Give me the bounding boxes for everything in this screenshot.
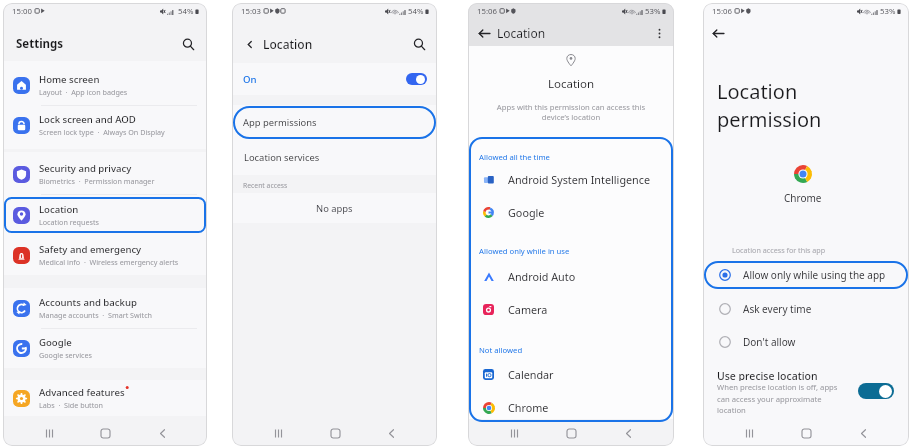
staticText: Camera bbox=[508, 302, 548, 317]
button[interactable]: Home bbox=[324, 422, 346, 444]
staticText: Location access for this app bbox=[732, 245, 826, 255]
button[interactable]: Security and privacy bbox=[3, 154, 207, 194]
staticText: Location permission bbox=[717, 78, 822, 133]
staticText: Calendar bbox=[508, 367, 554, 382]
button[interactable]: Allow only while using the app bbox=[703, 258, 909, 291]
button[interactable]: Toggle bbox=[406, 73, 427, 85]
button[interactable]: Home screen bbox=[3, 65, 207, 105]
staticText: 15:03 bbox=[241, 6, 261, 17]
staticText: Google bbox=[508, 205, 545, 220]
button[interactable]: Back bbox=[242, 36, 258, 52]
button[interactable]: Recents bbox=[503, 422, 525, 444]
staticText: Use precise location bbox=[717, 369, 818, 381]
staticText: Google bbox=[39, 336, 72, 349]
button[interactable]: Google bbox=[468, 195, 674, 229]
button[interactable]: Recents bbox=[738, 422, 760, 444]
button[interactable]: Back bbox=[380, 422, 402, 444]
staticText: Labs · Side button bbox=[39, 400, 104, 410]
staticText: Location bbox=[263, 36, 313, 52]
button[interactable]: Location services bbox=[232, 140, 437, 175]
button[interactable]: Ask every time bbox=[703, 292, 909, 325]
staticText: Allow only while using the app bbox=[743, 268, 886, 282]
staticText: Location services bbox=[244, 151, 320, 164]
staticText: App permissions bbox=[243, 116, 317, 129]
button[interactable]: Search bbox=[179, 35, 197, 53]
button[interactable]: Location bbox=[3, 195, 207, 235]
button[interactable]: Toggle bbox=[858, 383, 894, 399]
staticText: Location bbox=[548, 76, 595, 91]
button[interactable]: Google bbox=[3, 328, 207, 368]
staticText: Safety and emergency bbox=[39, 243, 142, 256]
staticText: 54% bbox=[408, 6, 424, 17]
staticText: Location requests bbox=[39, 217, 99, 227]
staticText: Biometrics · Permission manager bbox=[39, 176, 155, 186]
button[interactable]: App permissions bbox=[232, 105, 437, 140]
staticText: Recent access bbox=[243, 181, 288, 190]
button[interactable]: Recents bbox=[38, 422, 60, 444]
button[interactable]: Android Auto bbox=[468, 259, 674, 293]
button[interactable]: Search bbox=[411, 36, 427, 52]
button[interactable]: Camera bbox=[468, 292, 674, 326]
staticText: Chrome bbox=[508, 400, 549, 415]
button[interactable]: Recents bbox=[267, 422, 289, 444]
staticText: Don't allow bbox=[743, 335, 796, 349]
staticText: Ask every time bbox=[743, 302, 812, 316]
button[interactable]: Don't allow bbox=[703, 325, 909, 358]
button[interactable]: Back bbox=[852, 422, 874, 444]
staticText: Medical info · Wireless emergency alerts bbox=[39, 257, 179, 267]
staticText: 15:06 bbox=[477, 6, 497, 17]
staticText: Android Auto bbox=[508, 269, 576, 284]
staticText: 53% bbox=[880, 6, 896, 17]
staticText: 15:00 bbox=[12, 6, 32, 17]
staticText: 15:06 bbox=[712, 6, 732, 17]
staticText: Allowed only while in use bbox=[479, 246, 570, 256]
button[interactable]: Chrome bbox=[468, 390, 674, 424]
button[interactable]: Safety and emergency bbox=[3, 235, 207, 275]
staticText: Location bbox=[39, 203, 79, 216]
button[interactable]: Back bbox=[617, 422, 639, 444]
button[interactable]: On bbox=[232, 63, 437, 95]
button[interactable]: Back bbox=[476, 25, 492, 41]
staticText: When precise location is off, apps can a… bbox=[717, 382, 838, 415]
button[interactable]: Accounts and backup bbox=[3, 288, 207, 328]
button[interactable]: Home bbox=[560, 422, 582, 444]
button[interactable]: Android System Intelligence bbox=[468, 162, 674, 196]
staticText: Screen lock type · Always On Display bbox=[39, 127, 165, 137]
staticText: Accounts and backup bbox=[39, 296, 137, 309]
staticText: Home screen bbox=[39, 73, 100, 86]
staticText: Android System Intelligence bbox=[508, 172, 651, 187]
staticText: Location bbox=[497, 25, 546, 41]
staticText: Not allowed bbox=[479, 345, 523, 355]
button[interactable]: Home bbox=[94, 422, 116, 444]
button[interactable]: More options bbox=[652, 26, 666, 40]
staticText: 53% bbox=[645, 6, 661, 17]
staticText: On bbox=[243, 73, 257, 86]
staticText: Lock screen and AOD bbox=[39, 113, 136, 126]
button[interactable]: Back bbox=[151, 422, 173, 444]
staticText: 54% bbox=[178, 6, 194, 17]
staticText: Layout · App icon badges bbox=[39, 87, 128, 97]
button[interactable]: Advanced features bbox=[3, 378, 207, 418]
button[interactable]: Back bbox=[710, 25, 726, 41]
staticText: Chrome bbox=[784, 191, 822, 203]
staticText: Apps with this permission can access thi… bbox=[476, 102, 666, 122]
staticText: Manage accounts · Smart Switch bbox=[39, 310, 153, 320]
staticText: Advanced features bbox=[39, 386, 125, 399]
staticText: Allowed all the time bbox=[479, 152, 550, 162]
staticText: Google services bbox=[39, 350, 93, 360]
button[interactable]: Calendar bbox=[468, 357, 674, 391]
staticText: Security and privacy bbox=[39, 162, 132, 175]
staticText: No apps bbox=[316, 202, 353, 215]
button[interactable]: Home bbox=[795, 422, 817, 444]
staticText: Settings bbox=[16, 36, 64, 52]
button[interactable]: Lock screen and AOD bbox=[3, 105, 207, 145]
